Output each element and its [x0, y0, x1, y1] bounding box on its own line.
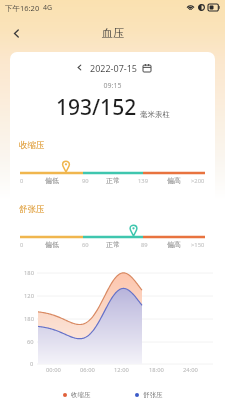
staticText: 90 [82, 177, 89, 185]
staticText: 139 [138, 177, 148, 185]
staticText: 09:15 [10, 81, 215, 91]
staticText: 89 [141, 241, 148, 248]
button[interactable]: Pick date [141, 62, 153, 74]
staticText: 0 [20, 241, 24, 248]
staticText: 收缩压 [19, 140, 45, 151]
staticText: 00:00 [46, 366, 61, 374]
staticText: 0 [20, 177, 24, 185]
staticText: 180 [24, 269, 34, 277]
staticText: 2022-07-15 [90, 62, 137, 74]
staticText: 舒张压 [19, 204, 45, 215]
staticText: 偏高 [167, 176, 181, 185]
staticText: 下午16:20 [5, 3, 40, 13]
staticText: 12:00 [114, 366, 129, 374]
staticText: 正常 [106, 176, 120, 185]
button[interactable]: Previous day [73, 61, 86, 74]
staticText: 180 [24, 315, 34, 323]
staticText: 193/152 [56, 93, 137, 122]
staticText: 18:00 [149, 366, 164, 374]
staticText: 60 [27, 338, 34, 346]
staticText: 血压 [102, 26, 124, 40]
staticText: 偏低 [45, 240, 59, 248]
button[interactable]: Back [4, 21, 28, 45]
staticText: 偏低 [45, 176, 59, 185]
staticText: 收缩压 [71, 391, 91, 399]
staticText: 120 [24, 292, 34, 300]
staticText: 偏高 [167, 240, 181, 248]
staticText: 0 [30, 360, 34, 368]
staticText: 舒张压 [143, 391, 163, 399]
staticText: 毫米汞柱 [140, 110, 170, 119]
staticText: 正常 [106, 240, 120, 248]
staticText: 4G [43, 3, 53, 13]
staticText: 60 [82, 241, 89, 248]
staticText: >150 [191, 241, 205, 248]
staticText: 24:00 [183, 366, 198, 374]
staticText: 06:00 [80, 366, 95, 374]
staticText: >200 [191, 177, 205, 185]
